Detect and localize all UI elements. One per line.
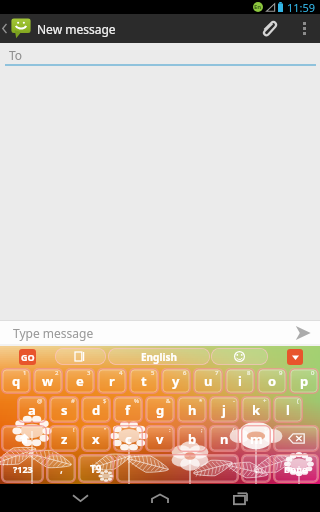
staticText: c: [125, 430, 132, 448]
button[interactable]: r: [97, 368, 127, 394]
staticText: T9: [90, 462, 102, 476]
staticText: English: [141, 350, 177, 364]
button[interactable]: Attach: [248, 14, 288, 43]
staticText: f: [125, 401, 131, 419]
button[interactable]: GO: [19, 349, 36, 365]
staticText: *: [199, 397, 203, 405]
button[interactable]: l: [273, 396, 303, 423]
staticText: v: [156, 430, 164, 448]
staticText: GO: [21, 351, 35, 363]
staticText: e: [76, 372, 84, 390]
staticText: ?: [264, 426, 267, 434]
staticText: u: [204, 372, 213, 390]
staticText: 0: [311, 369, 315, 377]
staticText: y: [172, 372, 180, 390]
staticText: %: [134, 397, 139, 405]
button[interactable]: .: [241, 454, 271, 483]
other: Navigate up: [2, 23, 7, 34]
staticText: 5: [151, 369, 155, 377]
button[interactable]: Send: [286, 321, 320, 344]
button[interactable]: Type message: [0, 321, 286, 344]
button[interactable]: j: [209, 396, 239, 423]
staticText: r: [109, 372, 115, 390]
button[interactable]: n: [209, 425, 239, 452]
button[interactable]: Hide keyboard: [287, 349, 303, 365]
button[interactable]: More options: [288, 14, 320, 43]
staticText: n: [220, 430, 229, 448]
staticText: To: [9, 47, 23, 63]
staticText: w: [42, 372, 54, 390]
button[interactable]: s: [49, 396, 79, 423]
staticText: 1: [23, 369, 27, 377]
staticText: p: [300, 372, 309, 390]
button[interactable]: [211, 348, 268, 365]
button[interactable]: h: [177, 396, 207, 423]
button[interactable]: k: [241, 396, 271, 423]
staticText: ': [137, 426, 139, 434]
staticText: .: [255, 461, 258, 476]
button[interactable]: e: [65, 368, 95, 394]
staticText: #: [71, 397, 75, 405]
staticText: z: [61, 430, 68, 448]
button[interactable]: d: [81, 396, 111, 423]
staticText: Done: [284, 463, 308, 475]
button[interactable]: q: [1, 368, 31, 394]
staticText: ?123: [13, 463, 33, 475]
button[interactable]: Navigate up: [0, 14, 122, 43]
staticText: h: [188, 401, 197, 419]
button[interactable]: a: [17, 396, 47, 423]
button[interactable]: b: [177, 425, 207, 452]
staticText: :: [169, 426, 171, 434]
staticText: 9: [279, 369, 283, 377]
button[interactable]: Done: [273, 454, 319, 483]
button[interactable]: i: [225, 368, 255, 394]
button[interactable]: T9: [78, 454, 114, 483]
staticText: l: [286, 401, 290, 419]
button[interactable]: u: [193, 368, 223, 394]
button[interactable]: Shift: [1, 425, 47, 452]
staticText: t: [141, 372, 147, 390]
button[interactable]: ,: [46, 454, 76, 483]
button[interactable]: v: [145, 425, 175, 452]
button[interactable]: Delete: [273, 425, 319, 452]
staticText: +: [263, 397, 267, 405]
button[interactable]: t: [129, 368, 159, 394]
staticText: En: [254, 3, 262, 11]
button[interactable]: [55, 348, 106, 365]
staticText: o: [268, 372, 277, 390]
staticText: 8: [247, 369, 251, 377]
staticText: &: [166, 397, 171, 405]
button[interactable]: g: [145, 396, 175, 423]
staticText: g: [156, 401, 165, 419]
staticText: m: [250, 430, 263, 448]
staticText: Type message: [13, 325, 94, 341]
staticText: k: [252, 401, 261, 419]
staticText: !: [73, 426, 75, 434]
button[interactable]: m: [241, 425, 271, 452]
button[interactable]: Recent apps: [208, 484, 272, 512]
button[interactable]: Home: [128, 484, 192, 512]
staticText: 3: [87, 369, 91, 377]
staticText: a: [28, 401, 36, 419]
button[interactable]: Space: [116, 454, 239, 483]
staticText: /: [232, 426, 235, 434]
button[interactable]: o: [257, 368, 287, 394]
staticText: 2: [55, 369, 59, 377]
staticText: -: [233, 397, 235, 405]
button[interactable]: f: [113, 396, 143, 423]
staticText: d: [92, 401, 101, 419]
staticText: 4: [119, 369, 123, 377]
button[interactable]: y: [161, 368, 191, 394]
button[interactable]: z: [49, 425, 79, 452]
staticText: x: [92, 430, 100, 448]
button[interactable]: x: [81, 425, 111, 452]
button[interactable]: p: [289, 368, 319, 394]
button[interactable]: w: [33, 368, 63, 394]
button[interactable]: ?123: [1, 454, 44, 483]
staticText: 11:59: [287, 0, 316, 14]
button[interactable]: c: [113, 425, 143, 452]
button[interactable]: English: [108, 348, 210, 365]
button[interactable]: Back: [48, 484, 112, 512]
staticText: ;: [201, 426, 203, 434]
staticText: $: [103, 397, 107, 405]
